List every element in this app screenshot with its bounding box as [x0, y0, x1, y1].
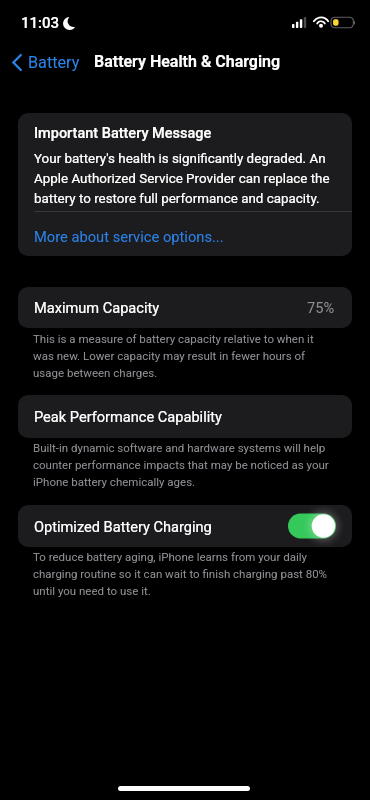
button[interactable]: Maximum Capacity	[18, 287, 352, 328]
staticText: To reduce battery aging, iPhone learns f…	[33, 547, 334, 598]
staticText: Peak Performance Capability	[34, 408, 222, 425]
button[interactable]: Peak Performance Capability	[18, 395, 352, 438]
button[interactable]: Optimized Battery Charging	[288, 513, 336, 539]
staticText: More about service options...	[34, 228, 224, 245]
staticText: Built-in dynamic software and hardware s…	[33, 438, 334, 489]
staticText: Optimized Battery Charging	[34, 518, 212, 535]
staticText: 75%	[307, 299, 335, 316]
staticText: Your battery's health is significantly d…	[34, 147, 336, 207]
staticText: This is a measure of battery capacity re…	[33, 329, 334, 380]
button[interactable]: More about service options...	[18, 212, 352, 256]
staticText: Battery Health & Charging	[94, 52, 281, 71]
staticText: Battery	[28, 53, 80, 72]
button[interactable]: Battery	[9, 48, 83, 77]
staticText: Important Battery Message	[34, 125, 212, 142]
staticText: 11:03	[21, 14, 60, 32]
staticText: Maximum Capacity	[34, 299, 160, 316]
